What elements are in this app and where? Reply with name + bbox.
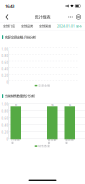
button[interactable]: 全部品类 <box>21 22 33 30</box>
button[interactable]: 交易金额 <box>35 84 50 88</box>
staticText: 0.80 <box>1 110 8 113</box>
button[interactable]: 全部渠道 <box>39 22 51 30</box>
staticText: 全部门店 <box>3 24 15 28</box>
staticText: 1.00 <box>1 103 8 106</box>
staticText: 0 <box>6 81 8 84</box>
staticText: 0.40 <box>1 124 8 127</box>
staticText: 销售数量 <box>38 144 50 148</box>
staticText: 全部品类 <box>21 24 33 28</box>
staticText: 0.20 <box>1 131 8 134</box>
staticText: 64 <box>51 103 53 106</box>
staticText: 65 <box>15 103 17 106</box>
staticText: 0.60 <box>1 61 8 64</box>
staticText: 0.40 <box>1 67 8 71</box>
staticText: 退款数量 <box>65 138 74 145</box>
button[interactable]: 2024-01-01 至今 <box>57 22 82 30</box>
staticText: 62 <box>69 103 71 106</box>
staticText: 0 <box>6 138 8 141</box>
staticText: 0.60 <box>1 117 8 120</box>
staticText: 1.00 <box>1 48 8 51</box>
staticText: 全部渠道 <box>39 24 51 28</box>
staticText: 0.80 <box>1 54 8 58</box>
staticText: 当前销售数量统计分析 <box>5 94 35 98</box>
staticText: 订单数量 <box>11 138 20 145</box>
staticText: 实际交易金额-月份分析 <box>5 35 36 39</box>
staticText: 统计报表 <box>34 14 50 20</box>
button[interactable]: 更多 <box>66 12 74 22</box>
button[interactable]: 全部门店 <box>3 22 15 30</box>
button[interactable]: 销售数量 <box>35 144 50 148</box>
staticText: 商品数量 <box>48 138 57 145</box>
button[interactable]: 返回 <box>2 12 11 22</box>
staticText: 0.20 <box>1 74 8 78</box>
staticText: 交易金额 <box>38 84 50 87</box>
staticText: 2024-01-01 至今 <box>57 24 82 28</box>
button[interactable]: 帮助 <box>74 12 82 22</box>
staticText: 16:43 <box>5 3 14 9</box>
